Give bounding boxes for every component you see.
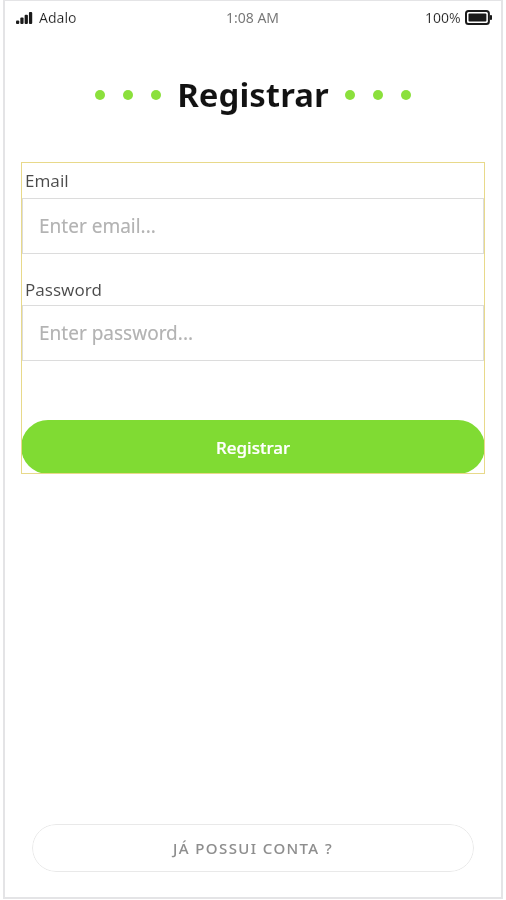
- button[interactable]: Enter password...: [22, 305, 484, 361]
- staticText: Enter email...: [39, 213, 156, 239]
- staticText: JÁ POSSUI CONTA ?: [173, 838, 334, 858]
- staticText: Adalo: [39, 8, 77, 27]
- button[interactable]: Enter email...: [22, 198, 484, 254]
- button[interactable]: Registrar: [21, 420, 485, 474]
- staticText: 1:08 AM: [226, 8, 280, 27]
- staticText: Password: [25, 278, 102, 301]
- staticText: Email: [25, 169, 69, 192]
- button[interactable]: JÁ POSSUI CONTA ?: [32, 824, 474, 872]
- staticText: Enter password...: [39, 320, 194, 346]
- staticText: Registrar: [177, 72, 329, 117]
- staticText: Registrar: [216, 436, 291, 459]
- staticText: 100%: [425, 8, 461, 27]
